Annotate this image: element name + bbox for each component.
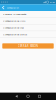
- button[interactable]: Configuración de alertas: [0, 31, 56, 38]
- button[interactable]: Home: [22, 93, 34, 100]
- button[interactable]: Back: [11, 93, 22, 100]
- staticText: CERRAR SESIÓN: [18, 44, 38, 48]
- button[interactable]: Recent apps: [34, 93, 45, 100]
- button[interactable]: Configuración de chat: [0, 24, 56, 31]
- staticText: Cambiar la contraseña: [3, 12, 26, 16]
- staticText: Configuración de lista: [3, 19, 25, 22]
- button[interactable]: Configuración de lista: [0, 18, 56, 24]
- button[interactable]: CERRAR SESIÓN: [2, 43, 54, 49]
- button[interactable]: Back: [0, 4, 7, 11]
- staticText: Configuración de chat: [3, 26, 24, 29]
- staticText: 21:05: [50, 0, 55, 4]
- button[interactable]: Cambiar la contraseña: [0, 11, 56, 18]
- staticText: Configuración de alertas: [3, 33, 27, 36]
- staticText: Configuración: [7, 6, 19, 9]
